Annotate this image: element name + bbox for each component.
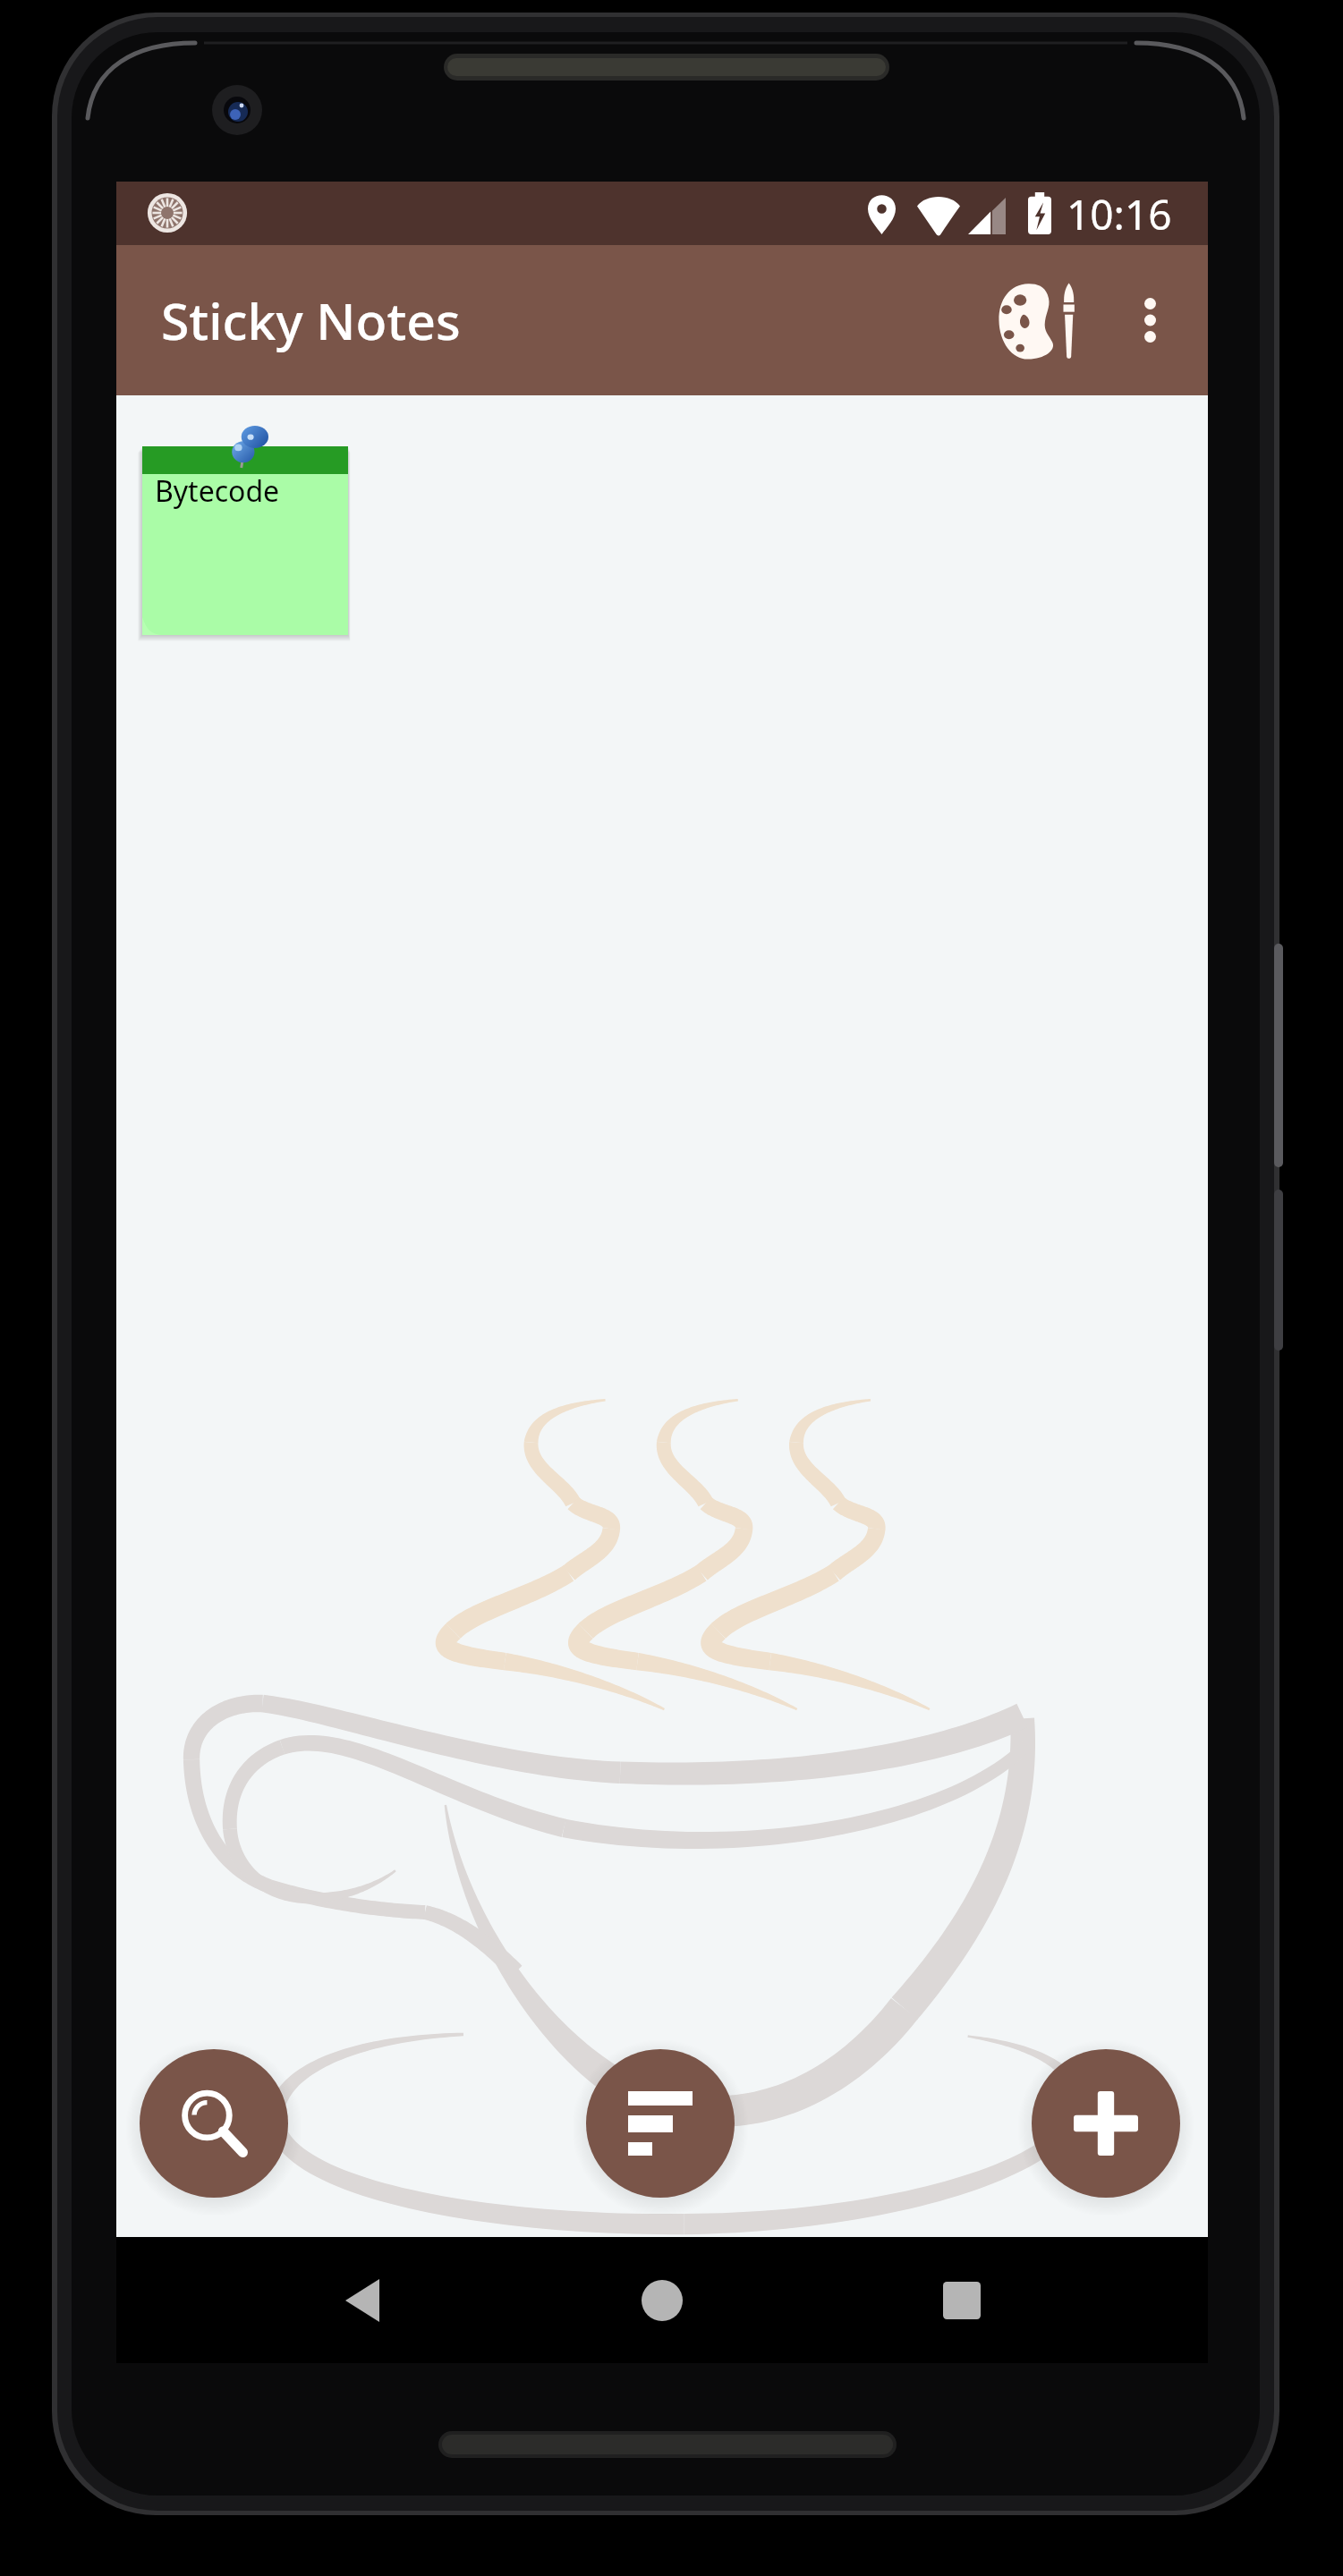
staticText: Sticky Notes xyxy=(161,285,461,355)
button[interactable]: Recent apps xyxy=(908,2247,1016,2354)
button[interactable]: Sort xyxy=(586,2049,735,2198)
staticText: 10:16 xyxy=(1067,186,1172,242)
button[interactable]: More options xyxy=(1101,267,1199,373)
button[interactable]: Home xyxy=(608,2247,716,2354)
button[interactable]: Note: Bytecode xyxy=(142,446,348,635)
button[interactable]: Search xyxy=(140,2049,288,2198)
button[interactable]: Add note xyxy=(1032,2049,1180,2198)
button[interactable]: Change theme xyxy=(971,267,1109,375)
button[interactable]: Back xyxy=(309,2247,416,2354)
staticText: Bytecode xyxy=(155,471,280,511)
